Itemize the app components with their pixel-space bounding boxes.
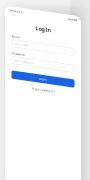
button[interactable]: Login [11, 69, 74, 78]
staticText: Login [39, 72, 47, 75]
button[interactable]: Forgot password? [5, 83, 81, 86]
staticText: Log In [35, 20, 50, 27]
staticText: Your email [15, 40, 29, 44]
staticText: Forgot password? [31, 83, 54, 86]
staticText: Password [12, 50, 25, 54]
staticText: Email [12, 34, 20, 37]
staticText: Your password [15, 57, 34, 61]
